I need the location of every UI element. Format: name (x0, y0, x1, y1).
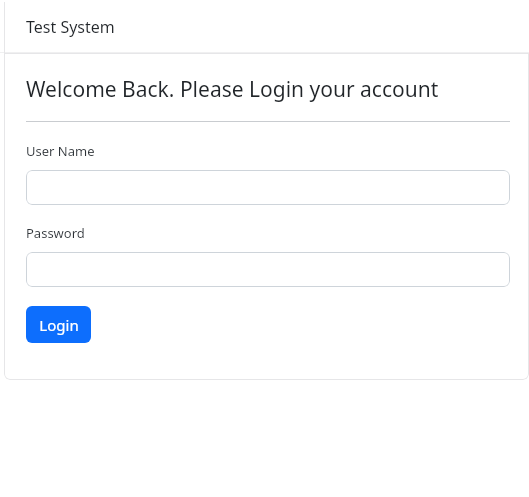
button[interactable]: Login (26, 306, 91, 343)
button[interactable]: Password (26, 252, 510, 287)
staticText: Login (39, 315, 79, 335)
staticText: Password (26, 224, 85, 242)
staticText: Test System (26, 16, 115, 38)
staticText: User Name (26, 142, 95, 160)
button[interactable]: User Name (26, 170, 510, 205)
staticText: Welcome Back. Please Login your account (26, 75, 439, 104)
button[interactable]: Test System (26, 16, 115, 38)
